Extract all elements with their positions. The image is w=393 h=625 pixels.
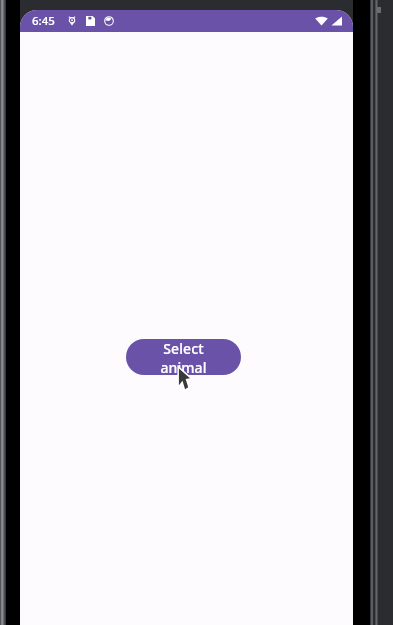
staticText: Select animal bbox=[142, 339, 225, 375]
button[interactable]: Select animal bbox=[126, 339, 241, 375]
staticText: 6:45 bbox=[32, 13, 55, 29]
